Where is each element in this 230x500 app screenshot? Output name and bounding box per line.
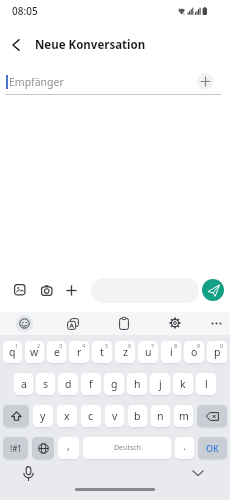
button[interactable]: f xyxy=(81,373,101,395)
staticText: t xyxy=(100,345,104,359)
button[interactable] xyxy=(16,315,33,332)
staticText: 2 xyxy=(37,342,41,349)
staticText: d xyxy=(65,377,72,391)
button[interactable] xyxy=(32,437,54,459)
staticText: 8 xyxy=(174,342,178,349)
staticText: s xyxy=(43,377,49,391)
staticText: Empfänger xyxy=(9,75,64,89)
button[interactable] xyxy=(66,285,77,296)
staticText: . xyxy=(183,439,186,453)
staticText: i xyxy=(170,345,173,359)
staticText: y xyxy=(40,409,46,423)
staticText: j xyxy=(159,377,162,391)
button[interactable]: o xyxy=(184,341,204,363)
staticText: a xyxy=(21,377,27,391)
staticText: k xyxy=(180,377,186,391)
staticText: 1 xyxy=(15,342,19,349)
staticText: n xyxy=(157,409,164,423)
staticText: w xyxy=(30,345,39,359)
staticText: !#1 xyxy=(10,443,22,454)
staticText: u xyxy=(145,345,152,359)
button[interactable]: k xyxy=(173,373,193,395)
button[interactable]: a xyxy=(14,373,33,395)
staticText: x xyxy=(64,409,70,423)
staticText: z xyxy=(123,345,128,359)
button[interactable]: z xyxy=(115,341,135,363)
button[interactable]: p xyxy=(207,341,227,363)
button[interactable] xyxy=(41,285,53,296)
button[interactable] xyxy=(3,405,29,427)
staticText: 0 xyxy=(220,342,224,349)
button[interactable]: x xyxy=(57,405,77,427)
staticText: 4 xyxy=(82,342,86,349)
staticText: Neue Konversation xyxy=(35,37,146,53)
staticText: 6 xyxy=(128,342,132,349)
staticText: g xyxy=(111,377,118,391)
button[interactable] xyxy=(197,73,214,90)
button[interactable]: r xyxy=(69,341,89,363)
staticText: Deutsch xyxy=(114,443,141,453)
button[interactable] xyxy=(192,470,204,477)
button[interactable]: w xyxy=(25,341,44,363)
button[interactable]: l xyxy=(196,373,216,395)
button[interactable]: e xyxy=(47,341,66,363)
staticText: o xyxy=(191,345,198,359)
staticText: v xyxy=(112,409,118,423)
staticText: l xyxy=(205,377,208,391)
staticText: 7 xyxy=(151,342,155,349)
staticText: p xyxy=(214,345,221,359)
button[interactable] xyxy=(23,466,34,481)
staticText: q xyxy=(9,345,16,359)
staticText: 9 xyxy=(197,342,201,349)
button[interactable]: b xyxy=(128,405,147,427)
button[interactable]: y xyxy=(33,405,53,427)
button[interactable] xyxy=(75,488,155,491)
button[interactable]: . xyxy=(175,437,194,459)
staticText: r xyxy=(77,345,82,359)
button[interactable] xyxy=(211,322,222,325)
button[interactable]: h xyxy=(127,373,147,395)
button[interactable]: c xyxy=(81,405,101,427)
staticText: h xyxy=(134,377,141,391)
button[interactable]: Deutsch xyxy=(83,437,171,459)
button[interactable]: !#1 xyxy=(3,437,28,459)
button[interactable]: , xyxy=(58,437,79,459)
staticText: 3 xyxy=(59,342,63,349)
button[interactable] xyxy=(119,317,129,330)
button[interactable] xyxy=(197,405,227,427)
button[interactable]: q xyxy=(3,341,22,363)
button[interactable]: g xyxy=(104,373,124,395)
staticText: , xyxy=(67,439,70,453)
button[interactable] xyxy=(12,37,28,53)
button[interactable]: s xyxy=(36,373,55,395)
button[interactable]: Empfänger xyxy=(0,62,230,95)
button[interactable]: t xyxy=(92,341,112,363)
staticText: f xyxy=(89,377,93,391)
button[interactable] xyxy=(169,317,181,329)
staticText: b xyxy=(134,409,141,423)
button[interactable]: n xyxy=(151,405,170,427)
button[interactable]: i xyxy=(161,341,181,363)
staticText: m xyxy=(179,409,189,423)
staticText: 5 xyxy=(105,342,109,349)
button[interactable] xyxy=(202,279,224,301)
button[interactable]: u xyxy=(138,341,158,363)
button[interactable]: d xyxy=(58,373,78,395)
staticText: c xyxy=(88,409,94,423)
button[interactable]: m xyxy=(174,405,193,427)
staticText: 08:05 xyxy=(12,4,38,18)
staticText: OK xyxy=(206,442,219,454)
button[interactable]: j xyxy=(150,373,170,395)
staticText: e xyxy=(54,345,60,359)
button[interactable] xyxy=(14,284,26,296)
button[interactable] xyxy=(67,318,79,330)
button[interactable]: v xyxy=(105,405,124,427)
button[interactable]: OK xyxy=(198,437,227,459)
